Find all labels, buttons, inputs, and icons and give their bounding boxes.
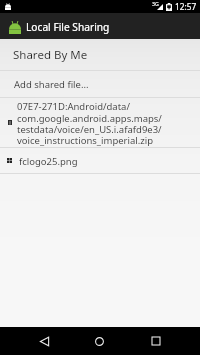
staticText: Shared By Me <box>13 47 88 63</box>
button[interactable]: Add shared file... <box>0 71 200 97</box>
button[interactable]: fclogo25.png <box>0 148 200 173</box>
staticText: 07E7-271D:Android/data/ com.google.andro… <box>17 100 162 147</box>
button[interactable]: Back <box>27 327 62 355</box>
staticText: fclogo25.png <box>19 155 78 168</box>
button[interactable]: Home <box>82 327 117 355</box>
staticText: Add shared file... <box>14 78 89 91</box>
staticText: 3G <box>152 0 159 7</box>
button[interactable]: 07E7-271D:Android/data/ com.google.andro… <box>0 98 200 147</box>
button[interactable]: Recent apps <box>138 327 173 355</box>
staticText: Local File Sharing <box>26 20 110 34</box>
staticText: 12:57 <box>175 1 197 12</box>
